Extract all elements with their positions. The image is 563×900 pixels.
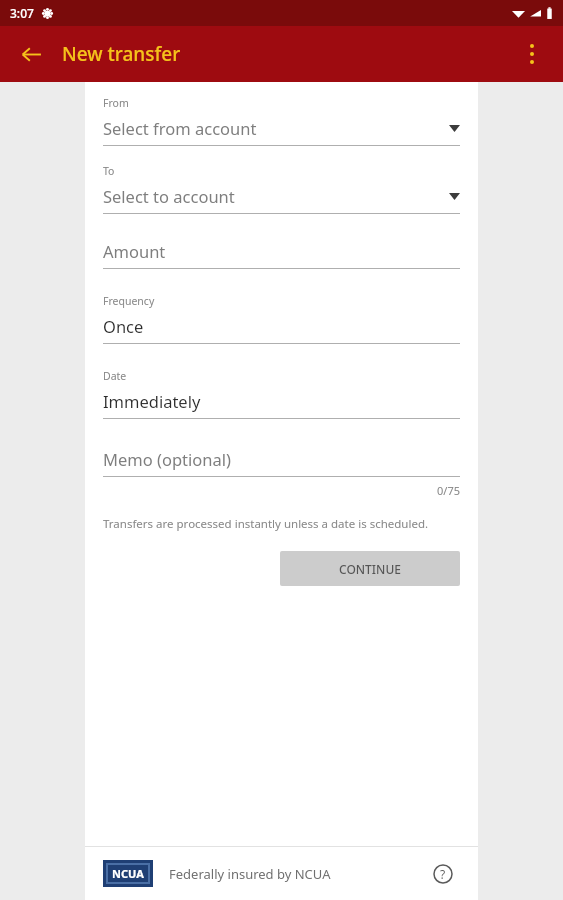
staticText: Frequency xyxy=(103,294,155,308)
staticText: Immediately xyxy=(103,390,460,412)
button[interactable]: Help xyxy=(426,857,460,891)
staticText: Select to account xyxy=(103,185,449,207)
button[interactable]: More options xyxy=(509,31,555,77)
staticText: From xyxy=(103,96,129,110)
staticText: CONTINUE xyxy=(339,561,401,577)
staticText: 3:07 xyxy=(10,5,34,21)
staticText: New transfer xyxy=(62,41,181,67)
button[interactable]: CONTINUE xyxy=(280,551,460,586)
button[interactable]: Frequency xyxy=(103,294,460,344)
staticText: Federally insured by NCUA xyxy=(169,865,331,883)
button[interactable]: NCUA xyxy=(103,860,153,887)
staticText: 0/75 xyxy=(103,483,460,498)
staticText: Once xyxy=(103,315,460,337)
staticText: Amount xyxy=(103,240,166,262)
button[interactable]: To xyxy=(103,164,460,214)
staticText: NCUA xyxy=(112,866,144,881)
staticText: Select from account xyxy=(103,117,449,139)
button[interactable]: Amount xyxy=(103,240,460,269)
button[interactable]: Memo (optional) xyxy=(103,448,460,477)
staticText: Date xyxy=(103,369,127,383)
button[interactable]: Back xyxy=(8,31,54,77)
button[interactable]: Date xyxy=(103,369,460,419)
staticText: Memo (optional) xyxy=(103,448,231,470)
staticText: ? xyxy=(440,866,446,882)
staticText: Transfers are processed instantly unless… xyxy=(103,516,429,532)
button[interactable]: From xyxy=(103,96,460,146)
staticText: To xyxy=(103,164,115,178)
